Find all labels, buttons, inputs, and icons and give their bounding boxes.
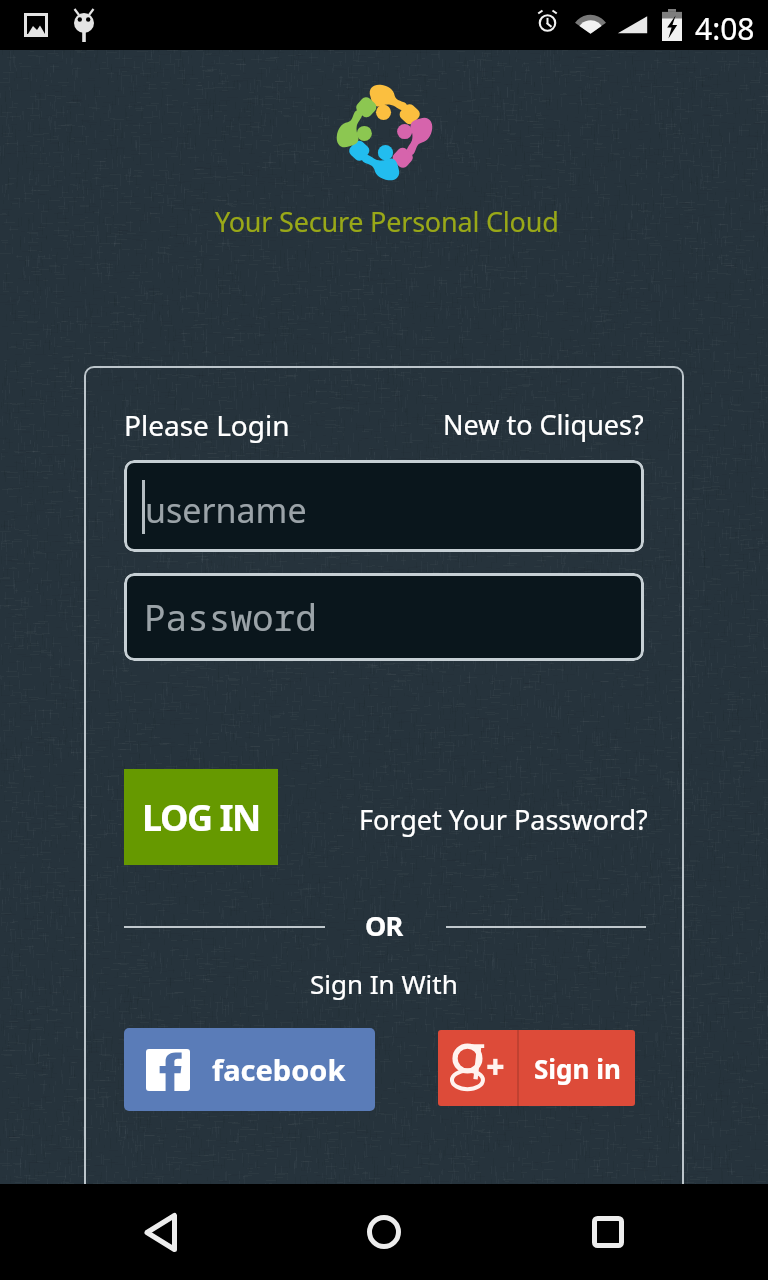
button[interactable]: Back [96, 1184, 224, 1280]
staticText: facebook [212, 1050, 346, 1089]
staticText: 4:08 [695, 8, 755, 49]
button[interactable]: LOG IN [124, 769, 278, 865]
staticText: OR [365, 907, 403, 944]
staticText: Your Secure Personal Cloud [215, 203, 559, 240]
button[interactable]: New to Cliques? [443, 406, 644, 443]
staticText: Sign In With [310, 966, 458, 1001]
button[interactable]: Sign in [438, 1030, 635, 1106]
staticText: New to Cliques? [443, 406, 644, 443]
staticText: Sign in [534, 1051, 621, 1086]
button[interactable]: Home [320, 1184, 448, 1280]
button[interactable]: facebook [124, 1028, 375, 1111]
button[interactable]: Forget Your Password? [359, 801, 648, 838]
staticText: LOG IN [142, 793, 260, 842]
staticText: Forget Your Password? [359, 801, 648, 838]
button[interactable]: username [124, 460, 644, 552]
staticText: Please Login [124, 406, 290, 444]
staticText: Password [144, 593, 317, 642]
button[interactable]: Recents [544, 1184, 672, 1280]
button[interactable]: Password [124, 573, 644, 661]
staticText: username [145, 487, 307, 533]
